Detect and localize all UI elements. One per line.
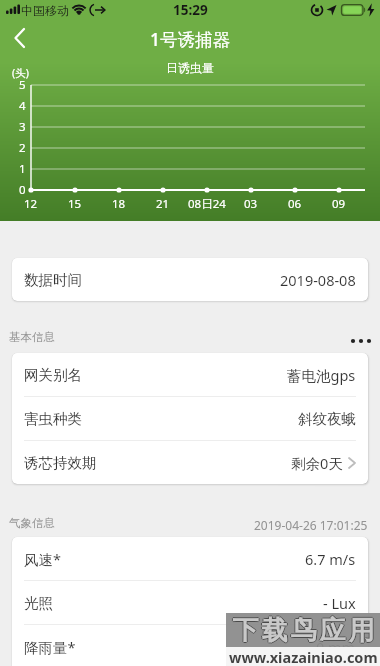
staticText: 下载鸟应用 [231,613,376,646]
staticText: 害虫种类 [24,410,82,428]
staticText: 1 [19,161,26,177]
staticText: 2019-08-08 [280,270,356,290]
staticText: 中国移动 [21,3,69,18]
staticText: (头) [12,66,29,80]
staticText: 08日24 [188,196,226,212]
staticText: 03 [244,196,258,212]
staticText: 剩余0天 [291,453,343,473]
staticText: 18 [112,196,126,212]
staticText: 0 mm [316,637,356,657]
staticText: 09 [332,196,346,212]
staticText: 下载鸟应用 [230,614,375,647]
staticText: 2019-04-26 17:01:25 [254,517,368,533]
staticText: 6.7 m/s [305,549,356,569]
staticText: 12 [24,196,38,212]
staticText: 蓄电池gps [287,365,356,385]
staticText: www.xiazainiao.com [229,647,378,666]
staticText: 0 [19,182,26,198]
staticText: 降雨量* [24,637,76,657]
staticText: 4 [19,98,26,114]
staticText: 基本信息 [9,330,55,344]
staticText: 21 [156,196,170,212]
staticText: 风速* [24,549,61,569]
staticText: 下载鸟应用 [231,615,376,648]
staticText: 斜纹夜蛾 [298,410,356,428]
staticText: 网关别名 [24,366,82,384]
staticText: 06 [288,196,302,212]
staticText: - Lux [323,593,356,613]
staticText: 3 [19,119,26,135]
staticText: 下载鸟应用 [232,614,377,647]
staticText: 日诱虫量 [166,60,214,75]
staticText: 15 [68,196,82,212]
staticText: 5 [19,77,26,93]
staticText: 2 [19,140,26,156]
staticText: 1号诱捕器 [150,27,231,51]
staticText: 气象信息 [9,516,55,530]
staticText: 下载鸟应用 [231,614,376,647]
staticText: 光照 [24,594,53,612]
staticText: 诱芯持效期 [24,454,97,472]
staticText: 15:29 [173,1,208,19]
staticText: 数据时间 [24,271,82,289]
